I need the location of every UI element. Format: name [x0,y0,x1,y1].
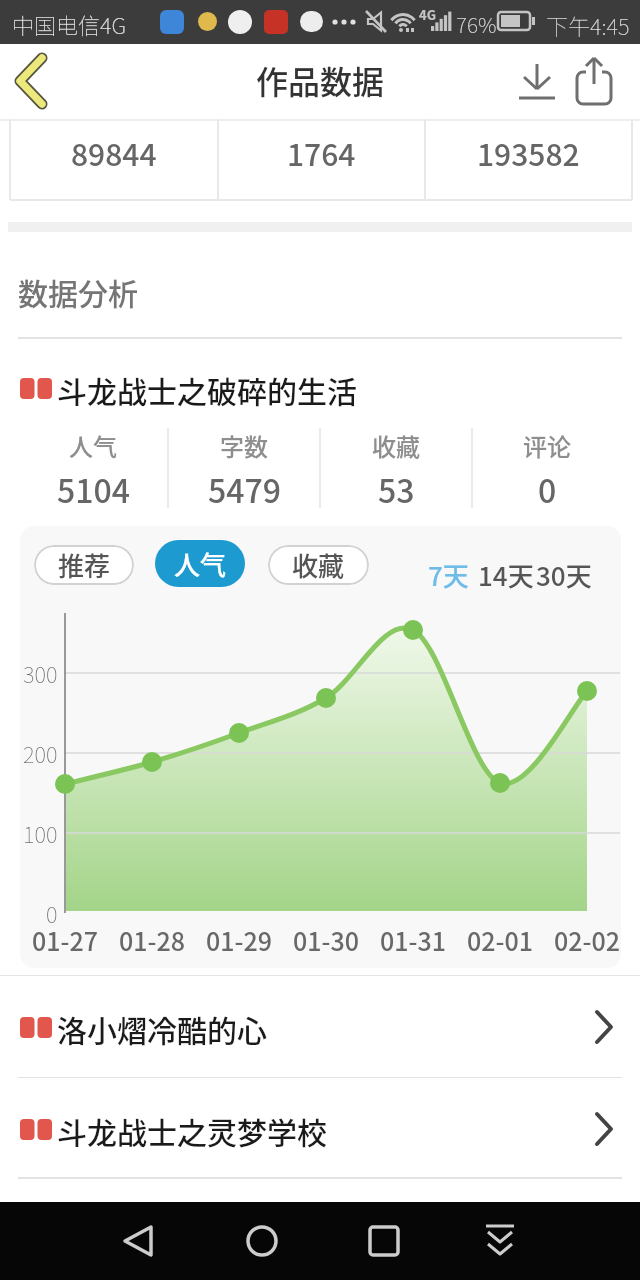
button[interactable] [472,1220,528,1264]
staticText: 0 [46,897,58,929]
staticText: 5479 [208,466,281,512]
staticText: 下午4:45 [546,9,630,41]
button[interactable]: 洛小熠冷酷的心 [0,976,640,1077]
staticText: 02-02 [554,922,620,956]
staticText: 数据分析 [18,270,138,313]
button[interactable] [570,54,618,110]
staticText: 作品数据 [256,57,385,103]
staticText: 评论 [523,428,571,462]
staticText: 300 [23,657,58,689]
button[interactable] [110,1220,166,1264]
button[interactable]: 斗龙战士之灵梦学校 [0,1078,640,1179]
staticText: 01-29 [206,922,272,956]
button[interactable]: 7天 [428,556,469,594]
staticText: 01-28 [119,922,185,956]
staticText: 收藏 [372,428,420,462]
staticText: 斗龙战士之破碎的生活 [57,368,357,411]
staticText: 200 [23,737,58,769]
staticText: 53 [378,466,415,512]
button[interactable] [8,50,64,112]
staticText: 76% [456,9,497,39]
button[interactable] [512,58,560,106]
staticText: 02-01 [467,922,533,956]
staticText: 193582 [477,131,580,174]
staticText: 字数 [220,428,268,462]
staticText: 人气 [69,428,117,462]
staticText: 洛小熠冷酷的心 [57,1007,267,1050]
staticText: 89844 [71,131,157,174]
staticText: 5104 [57,466,130,512]
button[interactable] [234,1220,290,1264]
staticText: 1764 [287,131,356,174]
button[interactable]: 推荐 [34,545,134,585]
staticText: 人气 [174,545,227,583]
button[interactable]: 30天 [536,556,592,594]
staticText: 推荐 [58,546,111,584]
button[interactable]: 14天 [478,556,534,594]
staticText: 0 [538,466,557,512]
button[interactable]: 收藏 [268,545,369,585]
staticText: 01-31 [380,922,446,956]
button[interactable]: 人气 [155,540,245,587]
staticText: 斗龙战士之灵梦学校 [57,1109,327,1152]
staticText: 01-30 [293,922,359,956]
staticText: 100 [23,817,58,849]
button[interactable] [356,1220,412,1264]
staticText: 收藏 [292,546,345,584]
staticText: 4G [419,5,436,24]
staticText: 01-27 [32,922,98,956]
staticText: 中国电信4G [12,8,127,40]
